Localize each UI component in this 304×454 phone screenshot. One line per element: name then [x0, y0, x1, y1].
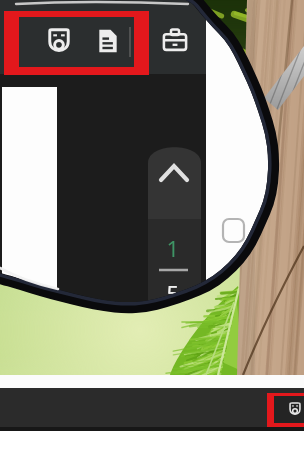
button[interactable]: Camera: [267, 393, 304, 427]
